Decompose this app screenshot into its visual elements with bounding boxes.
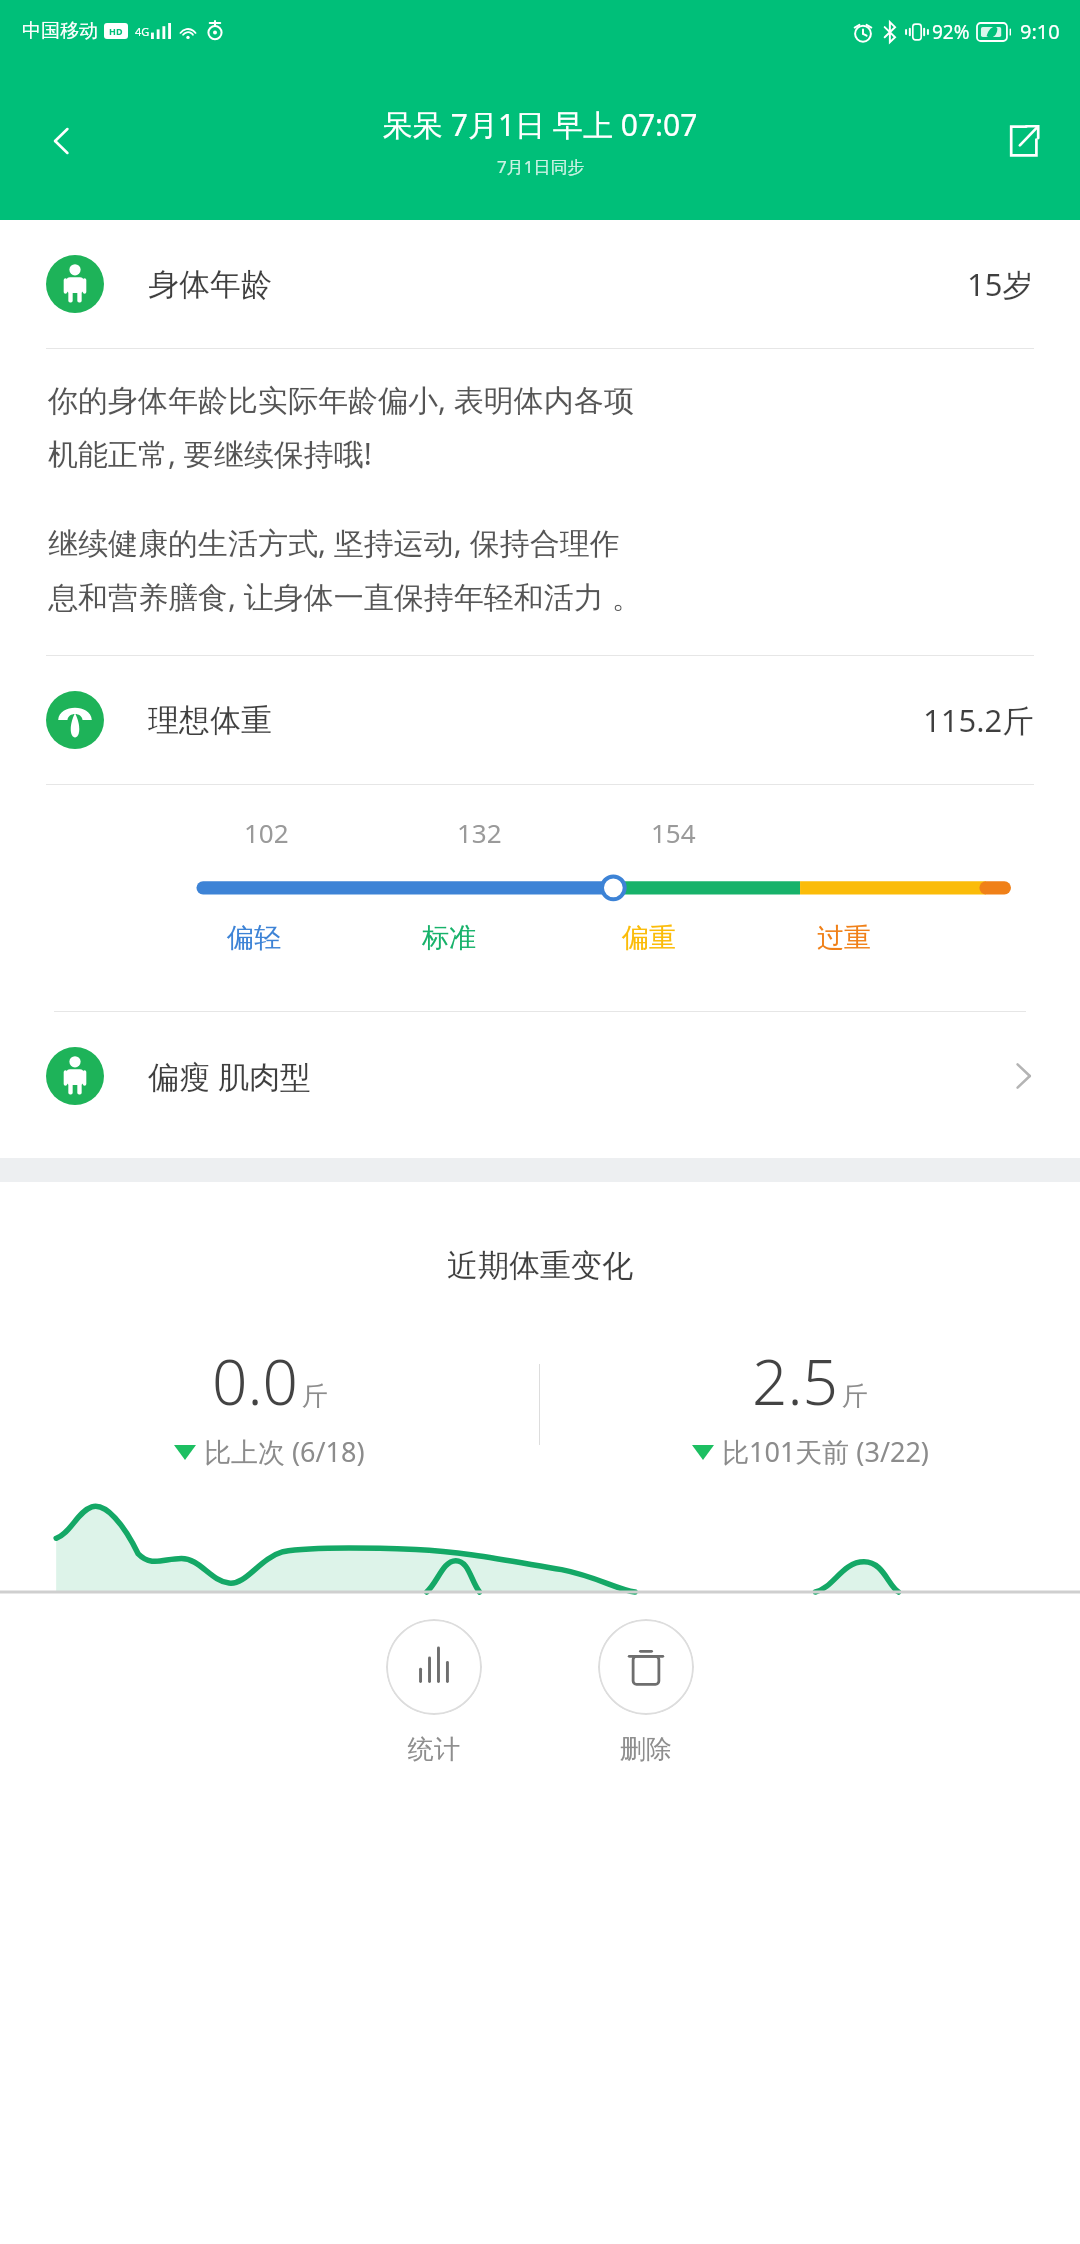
staticText: 呆呆 7月1日 早上 07:07 <box>383 104 698 145</box>
staticText: 132 <box>457 815 502 850</box>
staticText: 统计 <box>408 1733 460 1766</box>
staticText: 115.2斤 <box>923 699 1034 741</box>
staticText: 偏重 <box>622 921 676 955</box>
staticText: 4G <box>135 24 150 39</box>
staticText: 斤 <box>842 1380 868 1413</box>
staticText: 102 <box>244 815 289 850</box>
staticText: 比上次 (6/18) <box>204 1433 365 1469</box>
staticText: 9:10 <box>1020 18 1060 45</box>
staticText: 理想体重 <box>148 701 272 740</box>
staticText: 2.5 <box>752 1339 838 1423</box>
staticText: 斤 <box>302 1380 328 1413</box>
staticText: 比101天前 (3/22) <box>722 1433 929 1469</box>
staticText: 偏轻 <box>227 921 281 955</box>
staticText: 你的身体年龄比实际年龄偏小, 表明体内各项 机能正常, 要继续保持哦! <box>48 379 634 474</box>
button[interactable]: 身体年龄 <box>0 220 1080 348</box>
button[interactable]: Delete <box>566 1601 726 1766</box>
button[interactable]: Statistics <box>354 1601 514 1766</box>
staticText: 92% <box>932 19 970 45</box>
staticText: HD <box>109 25 123 37</box>
button[interactable]: 理想体重 <box>0 656 1080 784</box>
staticText: 近期体重变化 <box>0 1246 1080 1285</box>
button[interactable]: 偏瘦 肌肉型 <box>0 1012 1080 1140</box>
staticText: 过重 <box>817 921 871 955</box>
staticText: 7月1日同步 <box>497 155 585 178</box>
staticText: 继续健康的生活方式, 坚持运动, 保持合理作 息和营养膳食, 让身体一直保持年轻… <box>48 522 642 617</box>
staticText: 中国移动 <box>22 19 98 43</box>
staticText: 15岁 <box>967 263 1034 305</box>
staticText: 标准 <box>422 921 476 955</box>
button[interactable]: Share <box>990 109 1054 173</box>
staticText: 154 <box>651 815 696 850</box>
staticText: 删除 <box>620 1733 672 1766</box>
button[interactable]: Back <box>30 109 94 173</box>
staticText: 0.0 <box>212 1339 298 1423</box>
staticText: 身体年龄 <box>148 265 272 304</box>
staticText: 偏瘦 肌肉型 <box>148 1055 312 1097</box>
